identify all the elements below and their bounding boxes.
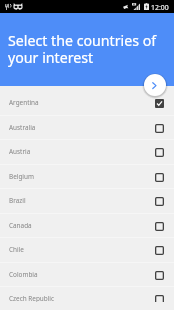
staticText: Colombia (9, 270, 38, 279)
button[interactable]: Czech Republic (0, 287, 174, 302)
button[interactable]: Next (143, 73, 167, 97)
button[interactable]: Belgium (0, 165, 174, 189)
staticText: 12:00 (151, 3, 169, 12)
button[interactable]: Canada (0, 214, 174, 238)
button[interactable]: Australia (0, 116, 174, 140)
button[interactable]: Chile (0, 238, 174, 263)
staticText: Argentina (9, 98, 39, 107)
staticText: Canada (9, 221, 32, 230)
button[interactable]: Argentina (0, 91, 174, 116)
staticText: Chile (9, 245, 24, 254)
button[interactable]: Austria (0, 140, 174, 165)
button[interactable]: Brazil (0, 189, 174, 214)
staticText: Australia (9, 123, 36, 132)
staticText: Belgium (9, 172, 34, 181)
button[interactable]: Colombia (0, 263, 174, 287)
staticText: Czech Republic (9, 294, 55, 302)
staticText: Austria (9, 147, 31, 156)
staticText: Select the countries of your interest (8, 31, 157, 67)
staticText: Brazil (9, 196, 26, 205)
